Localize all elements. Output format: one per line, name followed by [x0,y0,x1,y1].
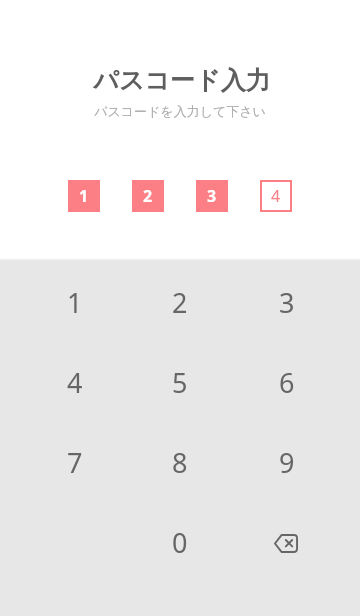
staticText: 1 [67,284,83,321]
button[interactable]: 0 [140,503,220,583]
staticText: 2 [172,284,188,321]
staticText: 0 [172,524,188,561]
button[interactable]: 3 [196,180,228,212]
staticText: パスコードを入力して下さい [94,103,266,119]
staticText: 8 [172,444,188,481]
button[interactable]: 1 [35,263,115,343]
button[interactable]: 9 [247,423,327,503]
button[interactable]: 1 [68,180,100,212]
button[interactable]: 2 [140,263,220,343]
staticText: 3 [279,284,295,321]
staticText: 3 [207,185,217,207]
staticText: 4 [271,185,281,207]
button[interactable]: 6 [247,343,327,423]
button[interactable]: 4 [35,343,115,423]
button[interactable]: 7 [35,423,115,503]
button[interactable]: 2 [132,180,164,212]
button[interactable]: 3 [247,263,327,343]
staticText: 2 [143,185,153,207]
button[interactable]: 8 [140,423,220,503]
button[interactable]: 4 [260,180,292,212]
staticText: 4 [67,364,83,401]
staticText: 5 [172,364,188,401]
staticText: 1 [79,185,89,207]
button[interactable]: Backspace [246,503,326,583]
staticText: 6 [279,364,295,401]
button[interactable]: 5 [140,343,220,423]
staticText: 9 [279,444,295,481]
staticText: パスコード入力 [93,65,271,96]
staticText: 7 [67,444,83,481]
